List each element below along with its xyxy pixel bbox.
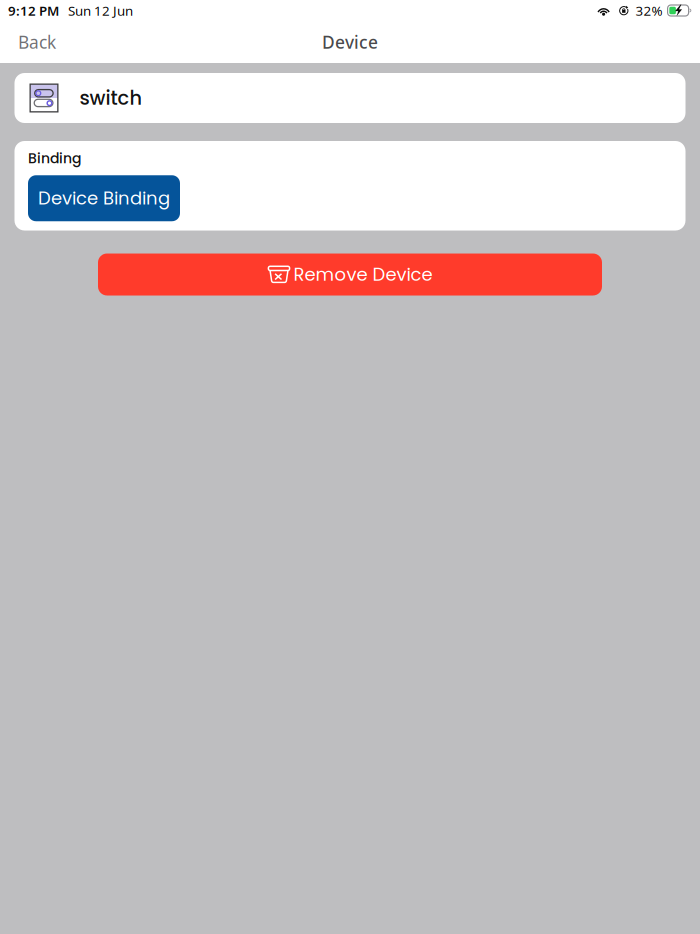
button[interactable]: switch [14, 73, 685, 123]
staticText: 9:12 PM [8, 2, 59, 19]
staticText: Back [18, 30, 56, 53]
staticText: Remove Device [293, 262, 432, 287]
staticText: 32% [636, 2, 663, 19]
button[interactable]: Device Binding [28, 175, 180, 221]
staticText: Sun 12 Jun [68, 2, 133, 19]
button[interactable]: Remove Device [98, 253, 602, 295]
staticText: Binding [28, 148, 81, 168]
staticText: Device Binding [38, 186, 170, 211]
staticText: switch [79, 84, 142, 112]
staticText: Device [322, 30, 378, 53]
button[interactable]: Back [0, 20, 70, 63]
